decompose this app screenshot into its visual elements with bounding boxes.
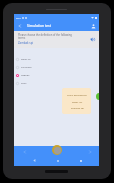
staticText: 9:41 xyxy=(16,16,21,19)
button[interactable]: bunk xyxy=(14,79,99,87)
staticText: water lily xyxy=(21,58,31,61)
button[interactable]: water lily xyxy=(14,55,99,63)
button[interactable]: Back xyxy=(30,156,39,165)
staticText: Simulation test xyxy=(27,23,51,28)
staticText: Zambak spi xyxy=(71,106,84,109)
button[interactable]: Correct xyxy=(96,93,99,100)
button[interactable]: Play pronunciation xyxy=(88,35,97,44)
button[interactable]: Word explanation xyxy=(62,88,91,114)
staticText: Please choose the definition of the foll… xyxy=(18,33,72,39)
button[interactable]: Recents xyxy=(76,156,85,165)
button[interactable]: daffodil xyxy=(14,71,99,79)
staticText: water lily xyxy=(72,100,83,103)
button[interactable]: Previous xyxy=(19,146,30,157)
button[interactable]: Back xyxy=(16,22,24,30)
button[interactable]: Next xyxy=(84,146,95,157)
button[interactable]: Profile xyxy=(89,22,97,30)
staticText: sunflower xyxy=(21,66,32,69)
button[interactable]: Record xyxy=(52,145,62,155)
button[interactable]: Home xyxy=(53,156,62,165)
button[interactable]: sunflower xyxy=(14,63,99,71)
staticText: daffodil xyxy=(21,74,30,77)
staticText: bunk xyxy=(21,82,27,85)
staticText: Zambak spi xyxy=(18,41,34,45)
staticText: Word explanation xyxy=(67,93,87,96)
